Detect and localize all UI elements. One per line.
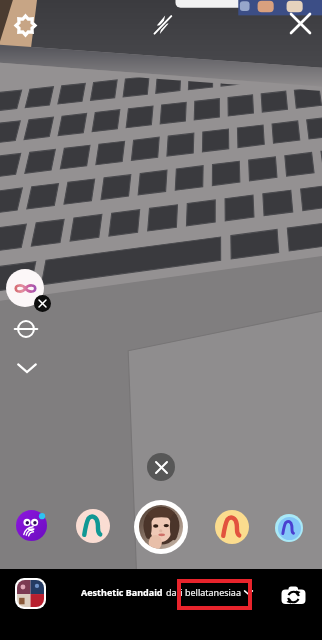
button[interactable]: Remove AR effect: [6, 269, 52, 315]
button[interactable]: Effect 2: [76, 509, 110, 543]
button[interactable]: Aesthetic Bandaid: [81, 586, 253, 598]
button[interactable]: Effect 5: [275, 514, 303, 542]
button[interactable]: Selected effect: [134, 500, 188, 554]
staticText: Aesthetic Bandaid: [81, 586, 163, 598]
button[interactable]: Switch camera: [277, 580, 309, 612]
button[interactable]: Flash off: [146, 8, 178, 40]
button[interactable]: Speed: [10, 313, 42, 345]
button[interactable]: Settings: [8, 8, 42, 42]
staticText: dari bellatanesiaa: [166, 586, 241, 598]
button[interactable]: Close: [284, 7, 316, 39]
button[interactable]: Clear effect: [147, 453, 175, 481]
button[interactable]: Gallery: [17, 580, 44, 607]
button[interactable]: Effect 4: [215, 510, 249, 544]
button[interactable]: Effect purple face: [16, 510, 47, 541]
button[interactable]: More options: [11, 352, 43, 384]
